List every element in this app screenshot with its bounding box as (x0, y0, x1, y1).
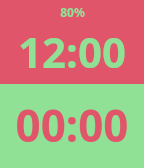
button[interactable]: 00:00 (0, 84, 144, 168)
staticText: 12:00 (18, 23, 126, 80)
staticText: 80% (60, 4, 85, 20)
button[interactable]: 80% (0, 0, 144, 84)
staticText: 00:00 (15, 95, 129, 155)
